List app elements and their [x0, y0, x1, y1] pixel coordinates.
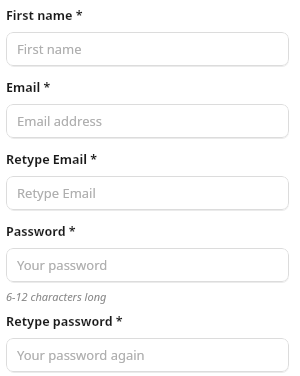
staticText: Your password [17, 256, 108, 274]
button[interactable]: First name [6, 32, 289, 66]
staticText: Email * [6, 79, 51, 96]
button[interactable]: Your password [6, 248, 289, 282]
staticText: First name [17, 40, 82, 58]
staticText: Email address [17, 112, 102, 130]
button[interactable]: Email address [6, 104, 289, 138]
staticText: Retype Email * [6, 151, 98, 168]
staticText: Password * [6, 223, 76, 240]
staticText: 6-12 characters long [6, 289, 107, 304]
staticText: Your password again [17, 346, 145, 364]
staticText: First name * [6, 7, 83, 24]
staticText: Retype password * [6, 313, 123, 330]
staticText: Retype Email [17, 184, 96, 202]
button[interactable]: Retype Email [6, 176, 289, 210]
button[interactable]: Your password again [6, 338, 289, 372]
